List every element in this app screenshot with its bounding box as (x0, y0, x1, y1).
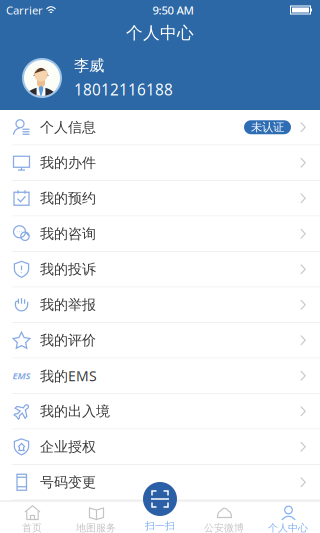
staticText: 公安微博 (204, 521, 244, 533)
staticText: 我的出入境 (40, 402, 110, 420)
button[interactable]: EMS (0, 358, 320, 394)
button[interactable]: 个人信息 (0, 110, 320, 145)
staticText: 我的预约 (40, 189, 96, 207)
button[interactable]: 我的出入境 (0, 394, 320, 429)
staticText: 个人信息 (40, 118, 96, 136)
staticText: 9:50 AM (152, 2, 193, 18)
button[interactable]: 我的预约 (0, 181, 320, 216)
staticText: 我的举报 (40, 296, 96, 313)
staticText: 个人中心 (268, 521, 308, 533)
button[interactable]: 号码变更 (0, 465, 320, 500)
staticText: 我的投诉 (40, 260, 96, 278)
staticText: 号码变更 (40, 473, 96, 491)
button[interactable]: 我的办件 (0, 145, 320, 181)
staticText: 我的EMS (40, 366, 97, 385)
button[interactable]: 首页 (0, 501, 64, 533)
button[interactable]: 我的举报 (0, 287, 320, 323)
staticText: 我的咨询 (40, 225, 96, 242)
button[interactable]: 我的投诉 (0, 252, 320, 287)
button[interactable]: 个人中心 (256, 501, 320, 533)
button[interactable]: 我的咨询 (0, 216, 320, 252)
staticText: 未认证 (251, 120, 284, 134)
staticText: Carrier (6, 2, 43, 18)
staticText: EMS (12, 369, 30, 382)
staticText: 18012116188 (74, 79, 173, 100)
button[interactable]: 企业授权 (0, 429, 320, 465)
staticText: 企业授权 (40, 438, 96, 455)
button[interactable]: 公安微博 (192, 501, 256, 533)
staticText: 李威 (74, 56, 104, 75)
staticText: 首页 (22, 521, 42, 533)
staticText: 我的评价 (40, 331, 96, 349)
staticText: 我的办件 (40, 154, 96, 171)
staticText: 个人中心 (126, 22, 194, 43)
button[interactable]: 地图服务 (64, 501, 128, 533)
button[interactable]: 扫一扫 (143, 482, 177, 516)
staticText: 地图服务 (76, 521, 116, 533)
staticText: 扫一扫 (145, 519, 175, 532)
button[interactable]: 我的评价 (0, 323, 320, 358)
